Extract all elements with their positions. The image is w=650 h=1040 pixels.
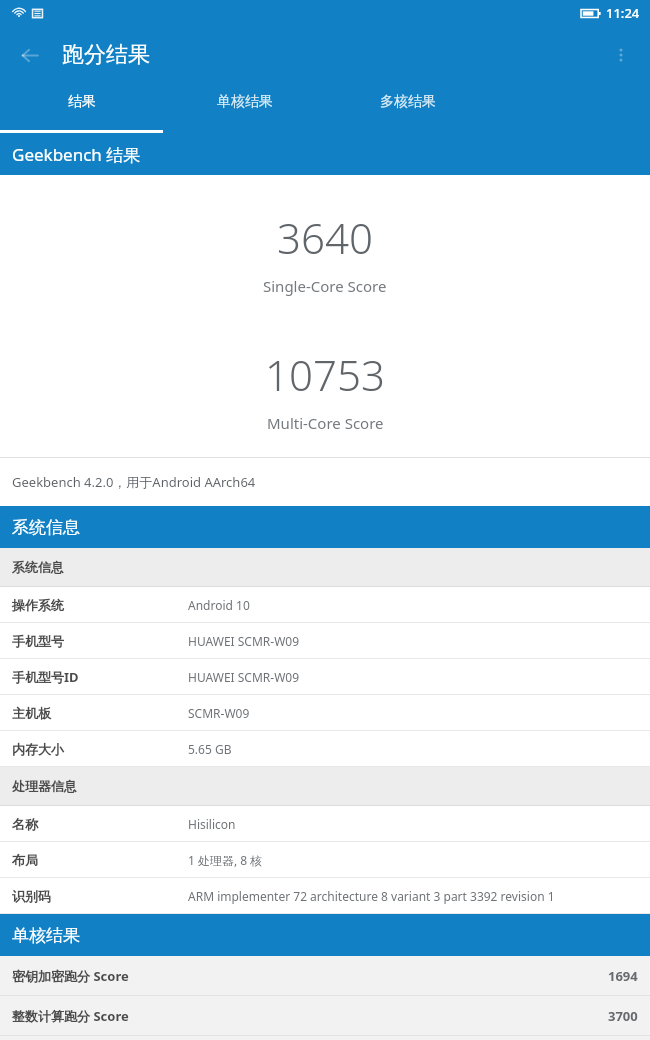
staticText: 系统信息: [12, 517, 80, 538]
staticText: 操作系统: [12, 597, 64, 613]
staticText: 密钥加密跑分 Score: [12, 967, 608, 985]
staticText: SCMR-W09: [188, 705, 250, 721]
button[interactable]: 手机型号: [0, 623, 650, 658]
button[interactable]: 布局: [0, 842, 650, 877]
button[interactable]: 内存大小: [0, 731, 650, 766]
button[interactable]: 整数计算跑分 Score: [0, 996, 650, 1035]
button[interactable]: 多核结果: [326, 83, 489, 133]
staticText: 3700: [608, 1007, 638, 1025]
staticText: 识别码: [12, 888, 51, 904]
staticText: Geekbench 结果: [12, 143, 141, 166]
button[interactable]: 单核结果: [163, 83, 326, 133]
staticText: 1 处理器, 8 核: [188, 852, 263, 868]
staticText: 布局: [12, 852, 38, 868]
staticText: Geekbench 4.2.0，用于Android AArch64: [12, 473, 256, 491]
button[interactable]: 识别码: [0, 878, 650, 913]
button[interactable]: 主机板: [0, 695, 650, 730]
button[interactable]: Back: [6, 32, 52, 78]
staticText: Hisilicon: [188, 816, 236, 832]
staticText: 系统信息: [12, 559, 64, 575]
staticText: 跑分结果: [62, 41, 150, 69]
staticText: 11:24: [606, 4, 640, 22]
staticText: 1694: [608, 967, 638, 985]
staticText: 处理器信息: [12, 778, 77, 794]
staticText: 多核结果: [380, 93, 436, 111]
button[interactable]: 名称: [0, 806, 650, 841]
staticText: 手机型号: [12, 633, 64, 649]
staticText: HUAWEI SCMR-W09: [188, 633, 300, 649]
button[interactable]: 手机型号ID: [0, 659, 650, 694]
staticText: Android 10: [188, 597, 250, 613]
staticText: 3640: [277, 209, 373, 266]
staticText: 单核结果: [12, 925, 80, 946]
staticText: 单核结果: [217, 93, 273, 111]
button[interactable]: 结果: [0, 83, 163, 133]
staticText: ARM implementer 72 architecture 8 varian…: [188, 888, 555, 904]
staticText: 5.65 GB: [188, 741, 232, 757]
staticText: HUAWEI SCMR-W09: [188, 669, 300, 685]
staticText: 手机型号ID: [12, 668, 79, 686]
staticText: 整数计算跑分 Score: [12, 1007, 608, 1025]
staticText: 结果: [68, 93, 96, 111]
button[interactable]: 操作系统: [0, 587, 650, 622]
staticText: 名称: [12, 816, 38, 832]
button[interactable]: More options: [598, 32, 644, 78]
button[interactable]: 密钥加密跑分 Score: [0, 956, 650, 995]
staticText: 主机板: [12, 705, 51, 721]
staticText: Single-Core Score: [263, 276, 387, 296]
staticText: Multi-Core Score: [267, 413, 384, 433]
staticText: 10753: [265, 346, 385, 403]
staticText: 内存大小: [12, 741, 64, 757]
